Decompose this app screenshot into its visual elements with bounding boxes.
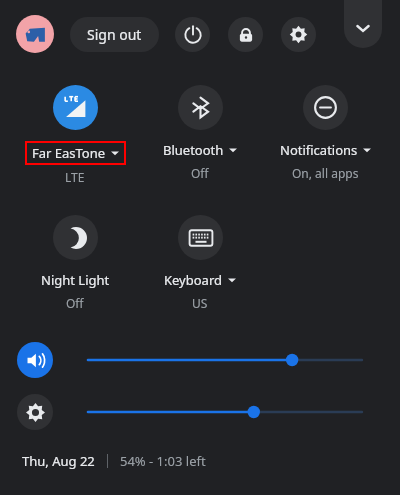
staticText: 54% - 1:03 left: [120, 452, 206, 470]
button[interactable]: Volume: [17, 342, 53, 378]
staticText: Off: [191, 165, 209, 181]
staticText: Notifications: [280, 141, 358, 159]
staticText: On, all apps: [292, 165, 359, 181]
button[interactable]: Notifications: [257, 85, 393, 181]
staticText: Bluetooth: [163, 141, 224, 159]
button[interactable]: Sign out: [70, 17, 159, 52]
button[interactable]: Keyboard: [132, 215, 268, 311]
staticText: Sign out: [87, 25, 142, 44]
staticText: LTE: [65, 169, 85, 185]
staticText: Far EasTone: [32, 144, 106, 162]
button[interactable]: Settings: [281, 17, 316, 52]
button[interactable]: Far EasTone: [7, 85, 143, 185]
button[interactable]: Night Light: [7, 215, 143, 311]
button[interactable]: Collapse: [344, 0, 382, 48]
button[interactable]: [86, 342, 366, 378]
button[interactable]: Bluetooth: [132, 85, 268, 181]
staticText: Keyboard: [164, 271, 223, 289]
button[interactable]: [86, 394, 366, 430]
staticText: Night Light: [41, 271, 110, 289]
button[interactable]: Brightness: [17, 394, 53, 430]
staticText: Off: [66, 295, 84, 311]
button[interactable]: Power: [175, 17, 210, 52]
staticText: US: [192, 295, 208, 311]
staticText: Thu, Aug 22: [22, 452, 95, 470]
button[interactable]: Account: [16, 15, 54, 53]
button[interactable]: Lock: [228, 17, 263, 52]
